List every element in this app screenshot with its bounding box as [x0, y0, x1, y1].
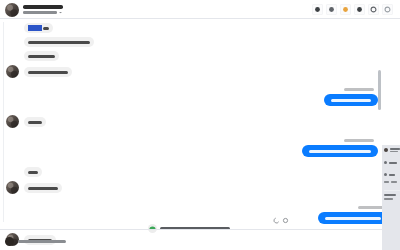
button[interactable] — [384, 173, 400, 176]
button[interactable] — [0, 139, 400, 157]
button[interactable] — [18, 240, 66, 243]
button[interactable]: Done — [382, 4, 393, 15]
button[interactable] — [0, 233, 400, 246]
button[interactable] — [384, 161, 400, 164]
button[interactable] — [384, 194, 396, 200]
button[interactable]: Reply — [274, 218, 279, 223]
button[interactable] — [23, 5, 63, 14]
button[interactable] — [0, 115, 400, 128]
button[interactable]: Search — [312, 4, 323, 15]
button[interactable] — [0, 23, 400, 33]
button[interactable] — [0, 65, 400, 78]
button[interactable] — [384, 148, 400, 152]
button[interactable] — [0, 51, 400, 61]
button[interactable] — [0, 167, 400, 177]
button[interactable]: Notifications — [340, 4, 351, 15]
button[interactable] — [0, 206, 400, 224]
button[interactable]: React — [283, 218, 288, 223]
button[interactable] — [0, 88, 400, 106]
button[interactable] — [0, 181, 400, 194]
button[interactable]: Profile — [326, 4, 337, 15]
button[interactable]: Your profile — [5, 237, 14, 246]
button[interactable]: More options — [368, 4, 379, 15]
button[interactable] — [384, 181, 400, 183]
button[interactable]: Settings — [354, 4, 365, 15]
button[interactable] — [145, 222, 236, 234]
button[interactable] — [0, 37, 400, 47]
